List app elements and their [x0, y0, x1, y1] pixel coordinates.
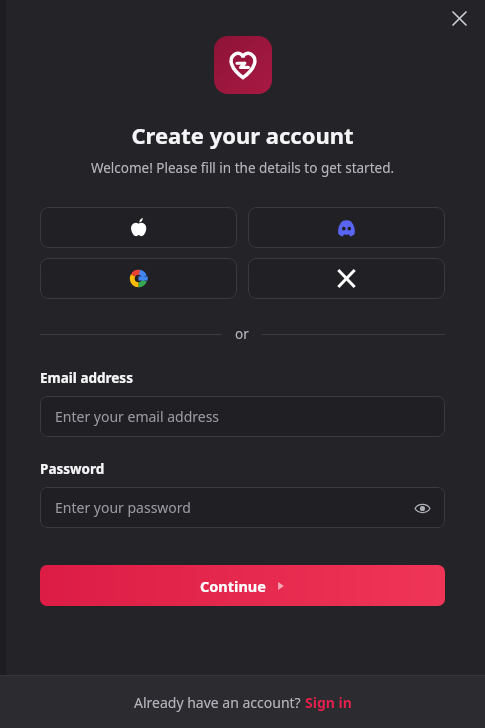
button[interactable]: Enter your email address: [40, 396, 445, 437]
button[interactable]: Sign up with X: [248, 258, 445, 299]
button[interactable]: Enter your password: [40, 487, 445, 528]
button[interactable]: Sign up with Apple: [40, 207, 237, 248]
staticText: Enter your password: [55, 498, 191, 517]
staticText: Password: [40, 460, 105, 478]
staticText: Create your account: [0, 120, 485, 150]
button[interactable]: Sign up with Google: [40, 258, 237, 299]
button[interactable]: Continue: [40, 565, 445, 606]
button[interactable]: Show password: [409, 495, 435, 521]
staticText: Continue: [200, 576, 266, 596]
staticText: Email address: [40, 369, 133, 387]
staticText: Already have an account?: [134, 693, 305, 712]
staticText: Enter your email address: [55, 407, 220, 426]
staticText: or: [235, 325, 249, 343]
button[interactable]: Close: [443, 2, 475, 34]
button[interactable]: Sign up with Discord: [248, 207, 445, 248]
staticText: Welcome! Please fill in the details to g…: [0, 159, 485, 177]
button[interactable]: Already have an account?: [134, 693, 352, 712]
staticText: Sign in: [305, 693, 352, 712]
